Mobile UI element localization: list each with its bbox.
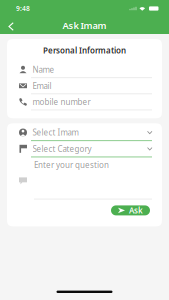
staticText: Email: [32, 80, 51, 91]
staticText: Personal Information: [43, 45, 126, 56]
staticText: mobile number: [32, 97, 90, 107]
staticText: Select Category: [32, 143, 91, 154]
staticText: Name: [32, 64, 54, 75]
button[interactable]: Ask: [111, 205, 150, 215]
staticText: Enter your question: [34, 160, 109, 170]
staticText: Select Imam: [32, 127, 78, 138]
button[interactable]: Back: [0, 18, 22, 33]
staticText: Ask Imam: [62, 19, 106, 32]
staticText: 9:48: [16, 4, 30, 13]
staticText: Ask: [129, 205, 143, 216]
